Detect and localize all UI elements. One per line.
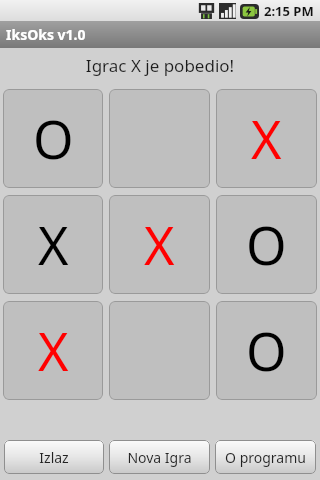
button[interactable]: O [3,89,103,188]
staticText: IksOks v1.0 [6,25,86,44]
staticText: O [246,209,287,280]
button[interactable]: X [216,89,317,188]
staticText: Igrac X je pobedio! [0,54,320,77]
button[interactable]: X [3,301,103,400]
staticText: Nova Igra [127,448,192,467]
staticText: 2:15 PM [264,2,314,20]
button[interactable]: O programu [215,440,316,474]
button[interactable]: O [216,301,317,400]
staticText: O [33,103,74,174]
staticText: Izlaz [39,448,69,467]
button[interactable]: Empty cell [109,89,210,188]
staticText: O [246,315,287,386]
button[interactable]: O [216,195,317,294]
button[interactable]: Empty cell [109,301,210,400]
staticText: X [38,315,69,386]
staticText: X [144,209,175,280]
staticText: X [38,209,69,280]
button[interactable]: Nova Igra [109,440,210,474]
button[interactable]: X [109,195,210,294]
button[interactable]: X [3,195,103,294]
button[interactable]: Izlaz [4,440,104,474]
staticText: O programu [225,448,306,467]
staticText: X [251,103,282,174]
